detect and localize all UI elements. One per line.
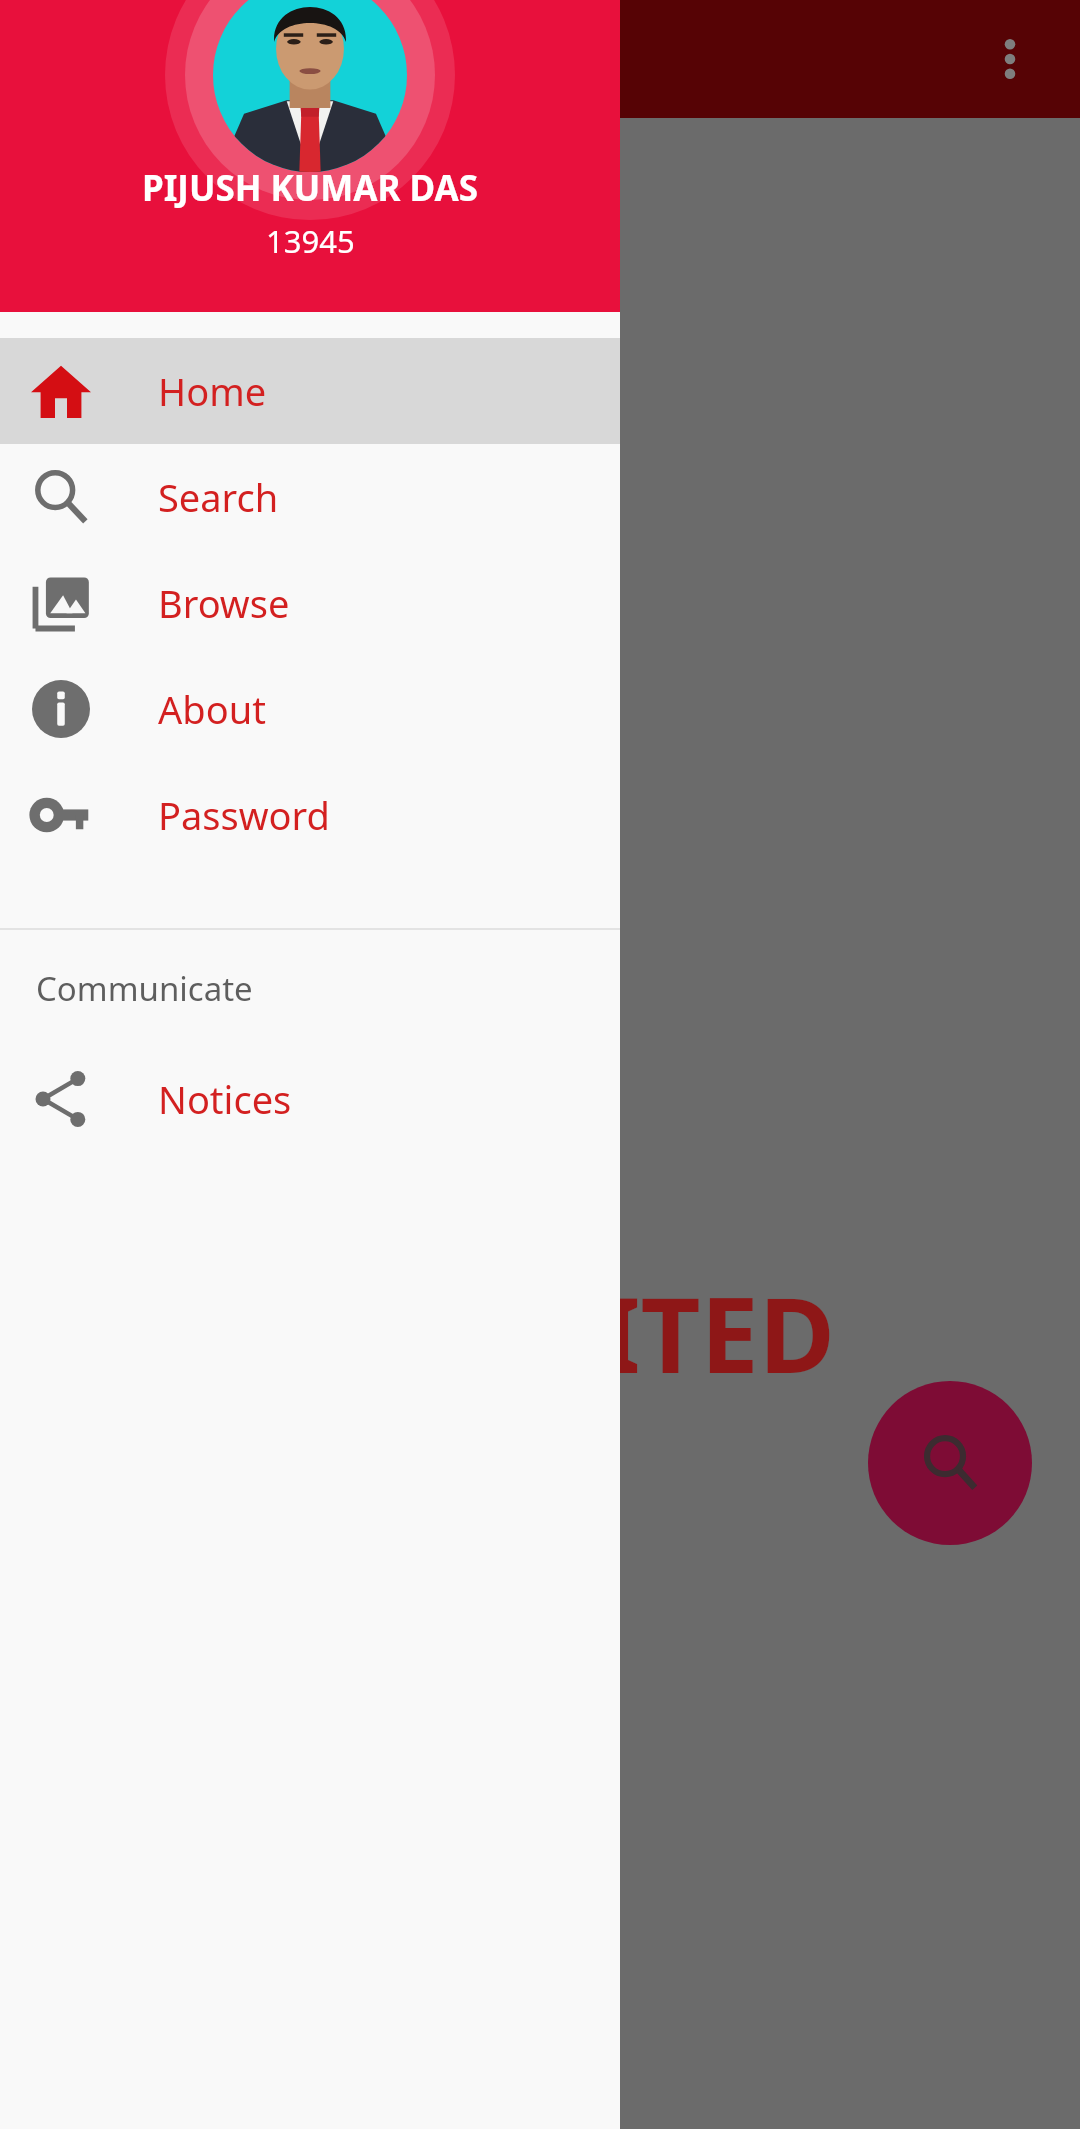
staticText: ITED (600, 1262, 835, 1404)
button[interactable]: Search (868, 1381, 1032, 1545)
staticText: 13945 (266, 220, 355, 262)
staticText: Communicate (36, 966, 253, 1011)
staticText: About (158, 683, 266, 735)
staticText: Home (158, 365, 267, 417)
button[interactable]: About (0, 656, 620, 762)
button[interactable]: Search (0, 444, 620, 550)
staticText: PIJUSH KUMAR DAS (142, 164, 478, 212)
staticText: Password (158, 789, 330, 841)
button[interactable]: More options (962, 11, 1058, 107)
button[interactable]: Home (0, 338, 620, 444)
button[interactable]: Password (0, 762, 620, 868)
staticText: Notices (158, 1073, 292, 1125)
staticText: Browse (158, 577, 290, 629)
button[interactable]: Notices (0, 1046, 620, 1152)
button[interactable]: Browse (0, 550, 620, 656)
staticText: Search (158, 471, 279, 523)
